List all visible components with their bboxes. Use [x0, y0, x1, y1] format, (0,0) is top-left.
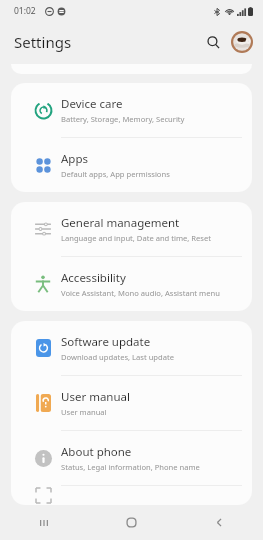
staticText: Status, Legal information, Phone name: [61, 462, 200, 472]
staticText: Battery, Storage, Memory, Security: [61, 114, 185, 124]
staticText: Accessibility: [61, 270, 126, 286]
staticText: Settings: [14, 32, 72, 52]
staticText: Default apps, App permissions: [61, 169, 170, 179]
button[interactable]: Recents: [0, 505, 87, 540]
staticText: Apps: [61, 151, 89, 167]
staticText: User manual: [61, 407, 107, 417]
button[interactable]: Home: [87, 505, 175, 540]
button[interactable]: Developer options: [11, 486, 252, 505]
button[interactable]: About phone: [11, 431, 252, 485]
staticText: General management: [61, 215, 180, 231]
button[interactable]: Accessibility: [11, 257, 252, 311]
staticText: About phone: [61, 444, 132, 460]
button[interactable]: General management: [11, 202, 252, 256]
button[interactable]: Search: [200, 29, 226, 55]
staticText: Language and input, Date and time, Reset: [61, 233, 212, 243]
staticText: Download updates, Last update: [61, 352, 174, 362]
staticText: User manual: [61, 389, 130, 405]
button[interactable]: Account: [230, 30, 254, 54]
staticText: Device care: [61, 96, 123, 112]
button[interactable]: Apps: [11, 138, 252, 192]
button[interactable]: User manual: [11, 376, 252, 430]
staticText: Software update: [61, 334, 151, 350]
button[interactable]: Software update: [11, 321, 252, 375]
staticText: 01:02: [14, 5, 36, 17]
button[interactable]: Device care: [11, 83, 252, 137]
button[interactable]: Back: [175, 505, 263, 540]
staticText: Voice Assistant, Mono audio, Assistant m…: [61, 288, 220, 298]
